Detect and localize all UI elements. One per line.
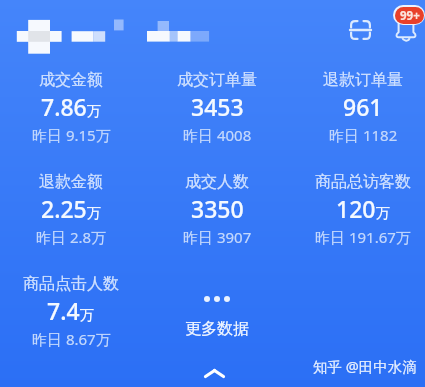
staticText: 成交人数 xyxy=(185,172,249,192)
staticText: 3453 xyxy=(191,91,244,122)
staticText: 昨日 191.67万 xyxy=(315,227,411,247)
staticText: 120 xyxy=(336,193,376,224)
staticText: 商品点击人数 xyxy=(23,274,119,294)
staticText: 7.4 xyxy=(47,295,80,326)
button[interactable]: 商品总访客数 xyxy=(290,172,425,247)
staticText: 万 xyxy=(80,306,95,324)
staticText: 昨日 4008 xyxy=(183,125,252,145)
button[interactable]: Notifications xyxy=(392,16,420,42)
staticText: 昨日 2.8万 xyxy=(36,227,107,247)
staticText: 万 xyxy=(87,204,102,222)
staticText: 99+ xyxy=(400,8,420,24)
staticText: 昨日 3907 xyxy=(183,227,252,247)
staticText: 知乎 @田中水滴 xyxy=(313,356,417,376)
staticText: 7.86 xyxy=(41,91,87,122)
button[interactable]: 成交人数 xyxy=(144,172,290,247)
staticText: 退款金额 xyxy=(39,172,103,192)
button[interactable]: 更多数据 xyxy=(144,274,290,339)
staticText: 成交订单量 xyxy=(177,70,257,90)
staticText: 更多数据 xyxy=(185,319,249,339)
staticText: 万 xyxy=(376,204,391,222)
staticText: 3350 xyxy=(191,193,244,224)
staticText: 昨日 8.67万 xyxy=(32,329,111,349)
button[interactable]: 退款订单量 xyxy=(290,70,425,145)
staticText: 昨日 9.15万 xyxy=(32,125,111,145)
staticText: 昨日 1182 xyxy=(329,125,398,145)
staticText: 万 xyxy=(87,102,102,120)
staticText: 商品总访客数 xyxy=(315,172,411,192)
button[interactable]: Expand xyxy=(192,362,236,384)
staticText: 退款订单量 xyxy=(323,70,403,90)
button[interactable]: 成交订单量 xyxy=(144,70,290,145)
button[interactable]: 成交金额 xyxy=(0,70,144,145)
button[interactable]: Scan code xyxy=(344,14,376,46)
staticText: 2.25 xyxy=(41,193,87,224)
button[interactable]: 退款金额 xyxy=(0,172,144,247)
button[interactable]: 商品点击人数 xyxy=(0,274,144,349)
staticText: 成交金额 xyxy=(39,70,103,90)
staticText: 961 xyxy=(343,91,383,122)
